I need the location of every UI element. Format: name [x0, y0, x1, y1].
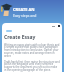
button[interactable]: More options: [51, 24, 55, 28]
button[interactable]: Bookmark: [57, 24, 60, 28]
staticText: Create Essay: [4, 34, 36, 41]
staticText: Writing an essay starts with a clear the…: [4, 43, 60, 58]
staticText: CREATE AN ESSAY WITH: [13, 7, 38, 12]
staticText: Draft freely first, then revise the stru…: [4, 60, 60, 72]
staticText: Easy steps and outline: [13, 13, 38, 18]
